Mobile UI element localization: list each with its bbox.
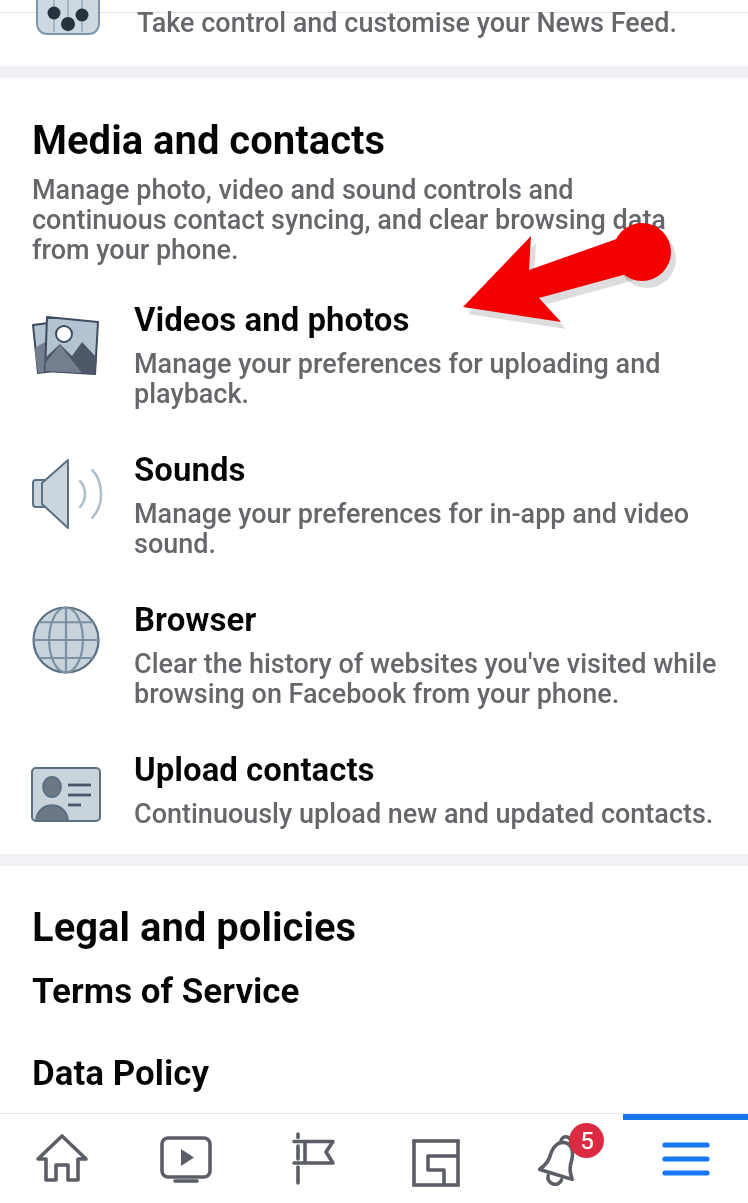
button[interactable]: Menu	[623, 1114, 748, 1203]
staticText: Manage your preferences for in-app and v…	[134, 498, 718, 559]
button[interactable]: Terms of Service	[0, 971, 748, 1012]
button[interactable]: Watch	[124, 1114, 248, 1203]
button[interactable]: Sounds	[0, 442, 748, 592]
staticText: Continuously upload new and updated cont…	[134, 798, 714, 830]
button[interactable]: Pages	[248, 1114, 373, 1203]
staticText: Sounds	[134, 450, 246, 489]
staticText: Take control and customise your News Fee…	[137, 7, 677, 39]
button[interactable]: Videos and photos	[0, 292, 748, 442]
staticText: Media and contacts	[32, 117, 386, 164]
staticText: Clear the history of websites you've vis…	[134, 648, 718, 709]
staticText: Upload contacts	[134, 750, 375, 789]
staticText: Browser	[134, 600, 257, 639]
button[interactable]: Browser	[0, 592, 748, 742]
staticText: 5	[580, 1127, 594, 1155]
staticText: Manage your preferences for uploading an…	[134, 348, 718, 409]
button[interactable]: Home	[0, 1114, 124, 1203]
staticText: Videos and photos	[134, 300, 410, 339]
button[interactable]: Upload contacts	[0, 742, 748, 854]
button[interactable]: Notifications	[498, 1114, 623, 1203]
staticText: Legal and policies	[32, 904, 357, 951]
button[interactable]: Marketplace	[373, 1114, 498, 1203]
button[interactable]: Data Policy	[0, 1053, 748, 1094]
staticText: Manage photo, video and sound controls a…	[32, 174, 702, 265]
